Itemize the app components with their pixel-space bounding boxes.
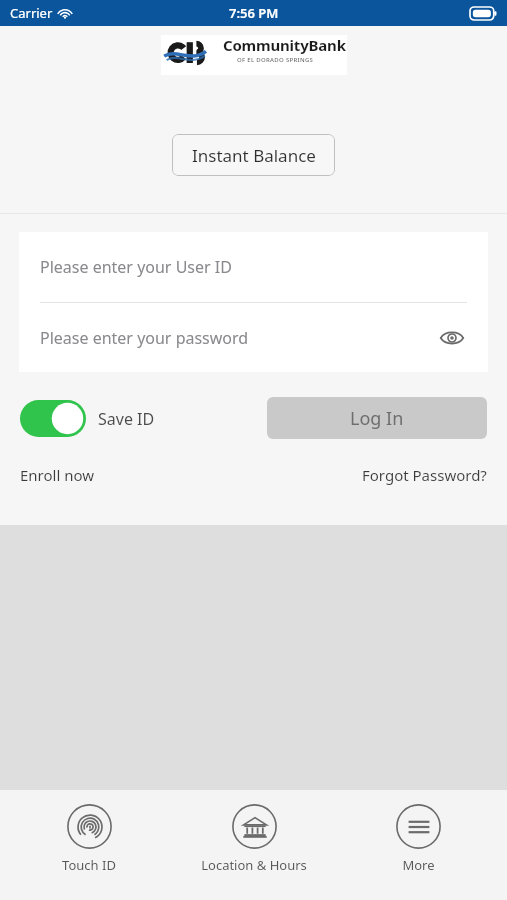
button[interactable]: Touch ID bbox=[14, 804, 164, 874]
button[interactable]: Show password bbox=[437, 323, 467, 353]
staticText: More bbox=[402, 856, 435, 874]
button[interactable]: Enroll now bbox=[20, 465, 95, 485]
staticText: 7:56 PM bbox=[229, 4, 279, 22]
button[interactable]: Forgot Password? bbox=[362, 465, 487, 485]
button[interactable]: Log In bbox=[267, 397, 487, 439]
staticText: Instant Balance bbox=[192, 144, 316, 167]
staticText: Carrier bbox=[10, 4, 53, 22]
staticText: CommunityBank bbox=[223, 35, 346, 55]
button[interactable]: Please enter your User ID bbox=[19, 232, 488, 302]
staticText: Log In bbox=[350, 406, 404, 431]
button[interactable]: Save ID bbox=[20, 400, 155, 437]
staticText: Forgot Password? bbox=[362, 465, 487, 485]
staticText: Location & Hours bbox=[201, 856, 307, 874]
staticText: Please enter your password bbox=[40, 327, 249, 349]
staticText: OF EL DORADO SPRINGS bbox=[237, 56, 314, 64]
button[interactable]: Instant Balance bbox=[172, 134, 335, 176]
staticText: Touch ID bbox=[62, 856, 116, 874]
staticText: Please enter your User ID bbox=[40, 256, 232, 278]
button[interactable]: More bbox=[343, 804, 493, 874]
staticText: Enroll now bbox=[20, 465, 95, 485]
button[interactable]: Please enter your password bbox=[19, 303, 488, 372]
button[interactable]: Location & Hours bbox=[179, 804, 329, 874]
staticText: Save ID bbox=[98, 408, 155, 430]
